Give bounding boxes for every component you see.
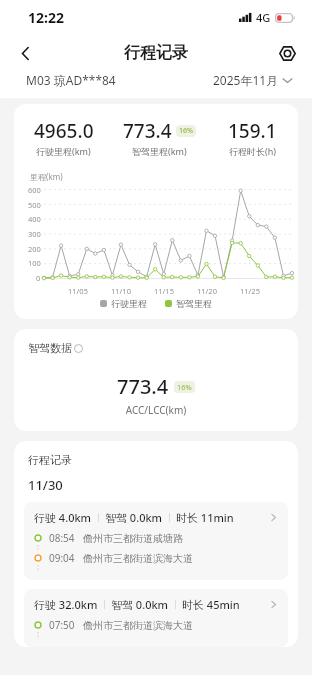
staticText: 时长 45min (182, 597, 240, 612)
staticText: 行驶里程 (111, 298, 147, 309)
staticText: 11/05 (68, 286, 88, 296)
button[interactable]: Back (8, 36, 42, 70)
button[interactable]: M03 琼AD***84 (26, 72, 116, 88)
staticText: 儋州市三都街道滨海大道 (83, 552, 193, 565)
staticText: 11/25 (240, 286, 260, 296)
staticText: 儋州市三都街道滨海大道 (83, 619, 193, 632)
staticText: 智驾 0.0km (105, 510, 163, 525)
staticText: 09:04 (49, 551, 75, 565)
staticText: 16% (177, 382, 192, 392)
other: Info (74, 344, 83, 353)
staticText: 智驾数据 (28, 341, 72, 355)
staticText: 600 (28, 185, 41, 195)
staticText: 行驶 4.0km (34, 510, 92, 525)
staticText: 行程记录 (124, 43, 188, 63)
staticText: 儋州市三都街道咸塘路 (83, 532, 183, 545)
button[interactable]: 行驶 4.0km (24, 502, 288, 580)
staticText: 773.4 (123, 118, 172, 144)
staticText: 11/10 (111, 286, 131, 296)
button[interactable]: Settings (270, 36, 304, 70)
staticText: 400 (28, 214, 41, 224)
staticText: 100 (28, 258, 41, 268)
staticText: 159.1 (228, 118, 277, 144)
staticText: 500 (28, 200, 41, 210)
staticText: 里程(km) (30, 171, 63, 182)
staticText: 时长 11min (176, 510, 234, 525)
staticText: 773.4 (117, 373, 169, 400)
staticText: 行驶 32.0km (34, 597, 98, 612)
staticText: 2025年11月 (213, 72, 279, 88)
staticText: 11/30 (28, 476, 63, 494)
staticText: 行驶里程(km) (36, 145, 91, 157)
staticText: 智驾里程(km) (132, 145, 187, 157)
staticText: 智驾里程 (176, 298, 212, 309)
button[interactable]: 行驶 32.0km (24, 589, 288, 647)
staticText: 智驾 0.0km (111, 597, 169, 612)
staticText: 4965.0 (34, 118, 94, 144)
button[interactable]: 行驶里程 (100, 298, 147, 309)
staticText: 16% (179, 126, 193, 136)
staticText: 4G (256, 10, 271, 25)
staticText: 07:50 (49, 618, 75, 632)
staticText: 行程记录 (28, 453, 72, 467)
staticText: 11/15 (154, 286, 174, 296)
staticText: ACC/LCC(km) (28, 403, 284, 417)
staticText: 12:22 (28, 8, 64, 27)
staticText: 11/20 (197, 286, 217, 296)
staticText: 0 (36, 273, 41, 283)
button[interactable]: 智驾里程 (165, 298, 212, 309)
button[interactable]: 2025年11月 (213, 72, 292, 88)
staticText: 200 (28, 244, 41, 254)
staticText: 300 (28, 229, 41, 239)
staticText: 08:54 (49, 531, 75, 545)
staticText: 行程时长(h) (229, 145, 276, 157)
